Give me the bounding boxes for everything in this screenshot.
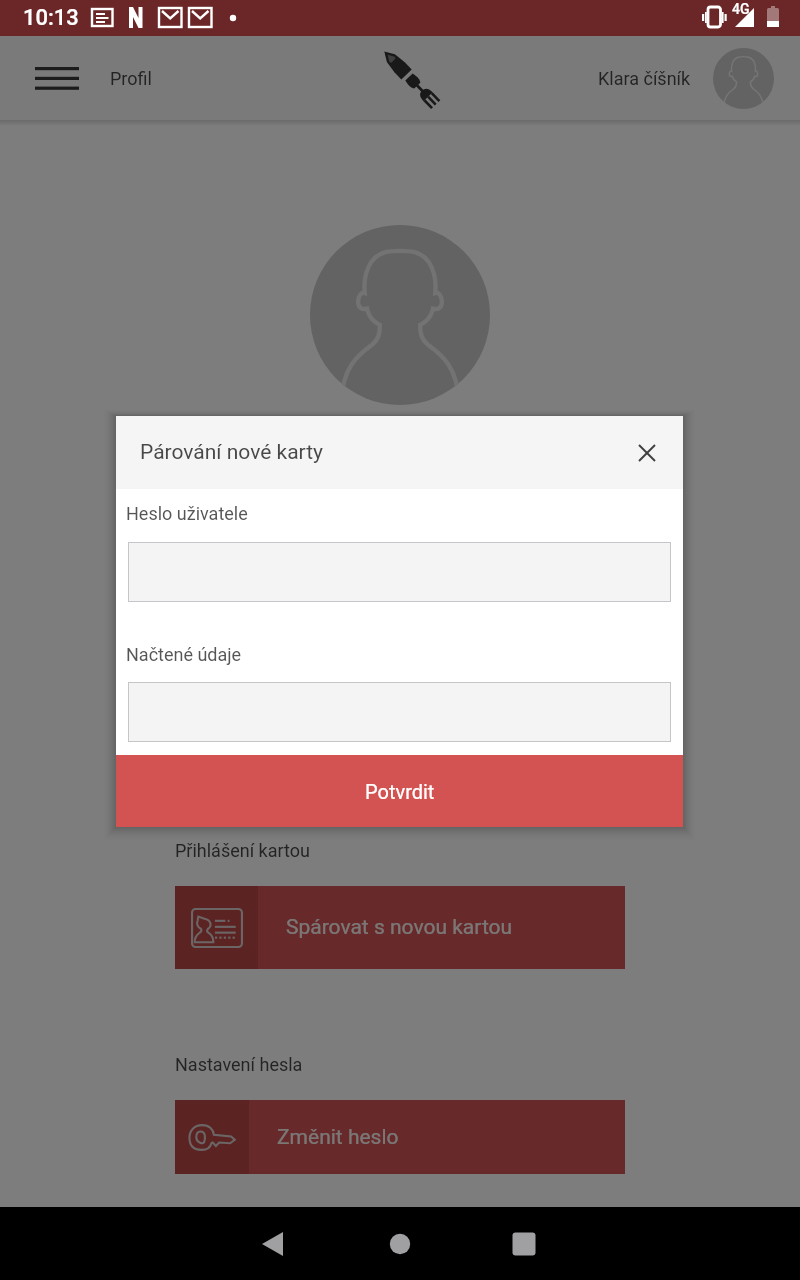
staticText: Změnit heslo (277, 1125, 399, 1150)
staticText: Heslo uživatele (126, 503, 248, 524)
button[interactable]: Spárovat s novou kartou (175, 886, 625, 969)
button[interactable]: Close (623, 429, 671, 477)
staticText: Párování nové karty (140, 440, 324, 465)
button[interactable]: Potvrdit (116, 755, 683, 827)
staticText: Profil (110, 68, 152, 89)
staticText: Spárovat s novou kartou (286, 915, 513, 940)
button[interactable]: Změnit heslo (175, 1100, 625, 1174)
staticText: Potvrdit (365, 780, 435, 803)
staticText: Nastavení hesla (175, 1054, 303, 1075)
button[interactable] (128, 542, 671, 602)
button[interactable]: Home (340, 1207, 460, 1280)
button[interactable] (128, 682, 671, 742)
other: Logo (373, 41, 447, 115)
staticText: Načtené údaje (126, 644, 242, 665)
staticText: Klara číšník (598, 68, 691, 89)
button[interactable]: Menu (21, 53, 170, 104)
button[interactable]: Klara číšník (592, 40, 780, 117)
button[interactable]: Recents (464, 1207, 584, 1280)
staticText: Přihlášení kartou (175, 840, 310, 861)
other: Menu (35, 67, 79, 90)
button[interactable]: Back (227, 1207, 347, 1280)
staticText: 4G (732, 1, 750, 17)
staticText: 10:13 (23, 5, 79, 31)
